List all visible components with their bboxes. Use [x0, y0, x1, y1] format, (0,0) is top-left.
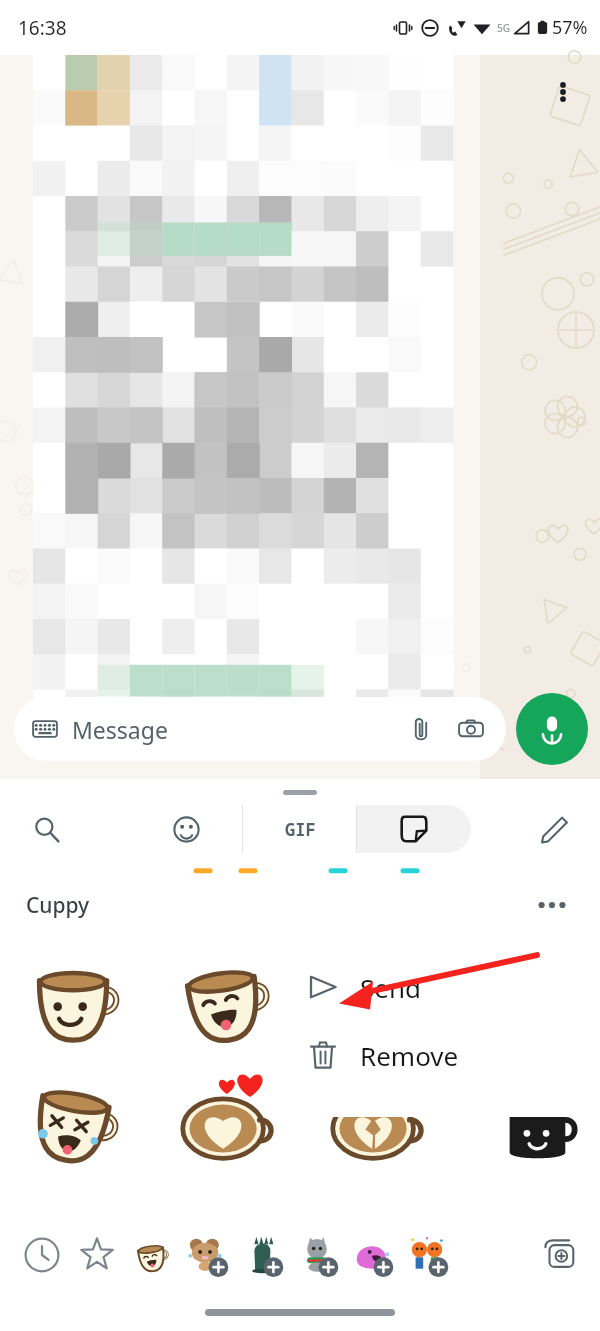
button[interactable]: Remove	[282, 1021, 594, 1089]
button[interactable]: GIF	[243, 805, 357, 853]
button[interactable]: Edit	[530, 805, 578, 853]
button[interactable]: Cat pack	[289, 1227, 344, 1282]
button[interactable]: Add sticker pack	[532, 1227, 586, 1281]
staticText: 16:38	[18, 15, 67, 41]
button[interactable]: Favourites	[69, 1227, 124, 1282]
button[interactable]: Recent	[14, 1227, 69, 1282]
button[interactable]	[300, 931, 450, 1063]
button[interactable]	[450, 931, 600, 1063]
button[interactable]: Orange pack	[399, 1227, 454, 1282]
button[interactable]: Send	[282, 953, 594, 1021]
staticText: 57%	[552, 15, 588, 40]
button[interactable]	[0, 931, 150, 1063]
button[interactable]: Blob pack	[344, 1227, 399, 1282]
button[interactable]: Dino pack	[234, 1227, 289, 1282]
button[interactable]: Cuppy pack	[124, 1227, 179, 1282]
button[interactable]	[450, 1063, 600, 1173]
button[interactable]	[0, 1063, 150, 1173]
button[interactable]: Camera	[454, 712, 488, 746]
staticText: Send	[360, 970, 421, 1005]
staticText: 5G	[497, 21, 510, 35]
staticText: Remove	[360, 1038, 459, 1073]
staticText: Message	[72, 714, 168, 745]
button[interactable]	[150, 1063, 300, 1173]
button[interactable]	[129, 805, 243, 853]
button[interactable]	[357, 805, 471, 853]
button[interactable]: Pack options	[530, 883, 574, 927]
button[interactable]: More options	[540, 69, 586, 115]
staticText: Cuppy	[26, 891, 90, 920]
button[interactable]: Hamster pack	[179, 1227, 234, 1282]
button[interactable]: Voice message	[516, 693, 588, 765]
button[interactable]	[150, 931, 300, 1063]
button[interactable]: Message	[14, 697, 506, 761]
button[interactable]: Attach	[404, 712, 438, 746]
button[interactable]	[300, 1063, 450, 1173]
staticText: GIF	[285, 818, 316, 841]
button[interactable]: Search	[22, 805, 70, 853]
